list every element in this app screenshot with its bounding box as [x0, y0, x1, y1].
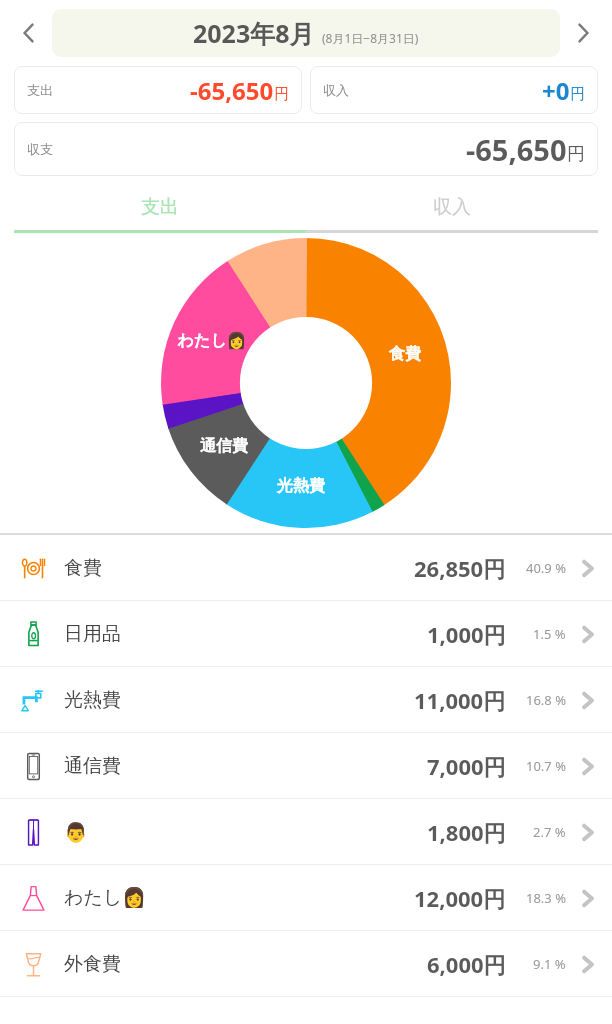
button[interactable]: 収入: [306, 190, 598, 224]
button[interactable]: 収支: [14, 122, 598, 176]
staticText: 外食費: [64, 952, 121, 976]
staticText: 収入: [433, 195, 471, 219]
staticText: 10.7 %: [526, 757, 566, 775]
staticText: 円: [567, 143, 585, 166]
button[interactable]: 収入: [310, 66, 598, 114]
button[interactable]: Previous month: [6, 10, 52, 56]
staticText: 支出: [141, 195, 179, 219]
staticText: 2023年8月: [193, 16, 315, 50]
button[interactable]: 光熱費: [0, 667, 612, 732]
staticText: 収支: [27, 141, 53, 157]
button[interactable]: Next month: [560, 10, 606, 56]
staticText: -65,650: [466, 130, 567, 169]
staticText: 11,000円: [414, 685, 506, 715]
staticText: 1,000円: [427, 619, 506, 649]
button[interactable]: わたし👩: [0, 865, 612, 930]
staticText: 食費: [64, 556, 102, 580]
button[interactable]: 2023年8月: [52, 9, 560, 57]
button[interactable]: 食費: [0, 535, 612, 600]
staticText: 40.9 %: [526, 559, 566, 577]
staticText: 収入: [323, 82, 349, 98]
button[interactable]: 👨: [0, 799, 612, 864]
staticText: +0: [542, 74, 570, 107]
staticText: 18.3 %: [526, 889, 566, 907]
button[interactable]: 外食費: [0, 931, 612, 996]
staticText: 👨: [64, 821, 88, 843]
staticText: 円: [570, 85, 585, 104]
staticText: 26,850円: [414, 553, 506, 583]
staticText: 1,800円: [427, 817, 506, 847]
button[interactable]: 通信費: [0, 733, 612, 798]
staticText: 食費: [389, 344, 421, 364]
staticText: 通信費: [64, 754, 121, 778]
staticText: わたし👩: [177, 331, 247, 351]
staticText: -65,650: [190, 74, 274, 107]
staticText: (8月1日−8月31日): [322, 30, 419, 46]
staticText: 通信費: [200, 436, 248, 456]
staticText: 日用品: [64, 622, 121, 646]
button[interactable]: 日用品: [0, 601, 612, 666]
staticText: 支出: [27, 82, 53, 98]
button[interactable]: 支出: [14, 190, 306, 224]
staticText: 光熱費: [64, 688, 121, 712]
staticText: 円: [274, 85, 289, 104]
staticText: 光熱費: [277, 476, 325, 496]
staticText: 16.8 %: [526, 691, 566, 709]
staticText: 6,000円: [427, 949, 506, 979]
staticText: 9.1 %: [533, 955, 566, 973]
staticText: 12,000円: [414, 883, 506, 913]
staticText: 2.7 %: [533, 823, 566, 841]
button[interactable]: 支出: [14, 66, 302, 114]
staticText: 7,000円: [427, 751, 506, 781]
staticText: わたし👩: [64, 886, 146, 910]
staticText: 1.5 %: [533, 625, 566, 643]
